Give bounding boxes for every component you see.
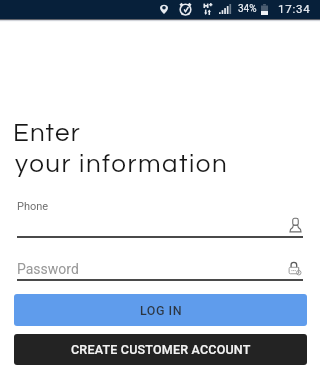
staticText: Phone xyxy=(17,200,49,213)
staticText: 17:34 xyxy=(278,2,311,15)
staticText: Password xyxy=(17,261,79,277)
button[interactable]: CREATE CUSTOMER ACCOUNT xyxy=(14,334,307,365)
staticText: CREATE CUSTOMER ACCOUNT xyxy=(71,342,251,357)
staticText: 34% xyxy=(238,3,257,15)
staticText: LOG IN xyxy=(140,303,182,318)
staticText: your information xyxy=(15,151,229,178)
staticText: Enter xyxy=(13,120,81,147)
button[interactable]: Forgot password xyxy=(288,261,302,276)
button[interactable]: LOG IN xyxy=(14,294,307,326)
button[interactable]: Account xyxy=(290,218,301,232)
